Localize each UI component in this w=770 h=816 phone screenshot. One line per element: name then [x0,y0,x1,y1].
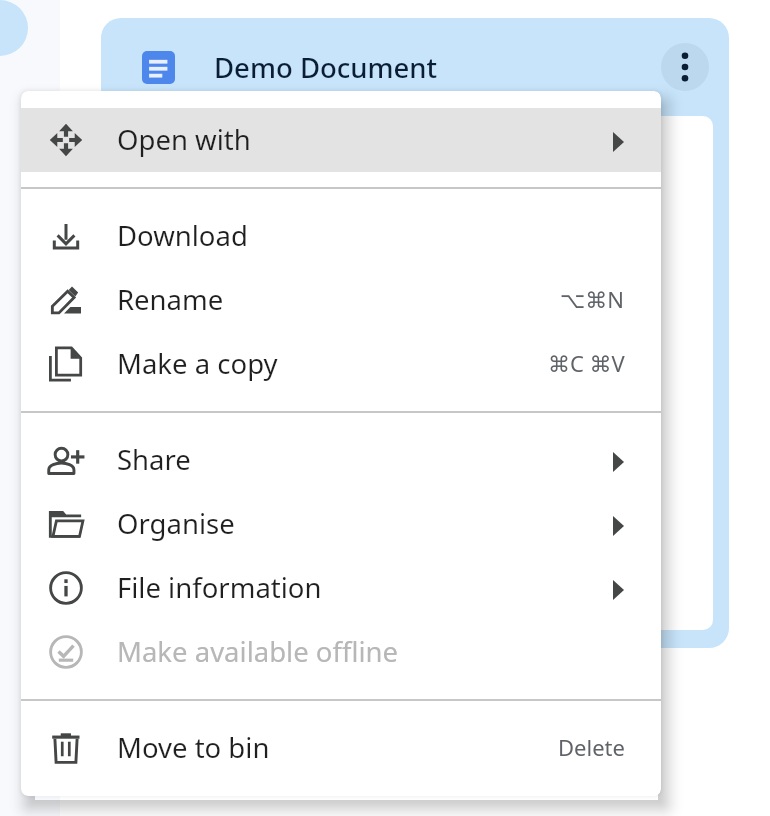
staticText: Rename [117,281,224,318]
staticText: Download [117,217,248,254]
button[interactable]: Make a copy [21,332,661,396]
staticText: Open with [117,121,251,158]
button[interactable]: Share [21,428,661,492]
button[interactable]: Organise [21,492,661,556]
button[interactable]: Make available offline [21,620,661,684]
button[interactable]: More options [661,43,709,91]
button[interactable]: File information [21,556,661,620]
button[interactable]: Rename [21,268,661,332]
staticText: Organise [117,505,235,542]
staticText: Move to bin [117,729,270,766]
staticText: ⌥⌘N [560,284,625,314]
staticText: Make available offline [117,633,399,670]
button[interactable]: Move to bin [21,716,661,780]
staticText: Make a copy [117,345,278,382]
staticText: Demo Document [214,49,438,86]
staticText: Delete [558,732,625,762]
button[interactable]: Download [21,204,661,268]
button[interactable]: Demo Document [101,18,729,648]
staticText: File information [117,569,322,606]
staticText: Share [117,441,191,478]
staticText: ⌘C ⌘V [548,348,625,378]
button[interactable]: Open with [21,108,661,172]
